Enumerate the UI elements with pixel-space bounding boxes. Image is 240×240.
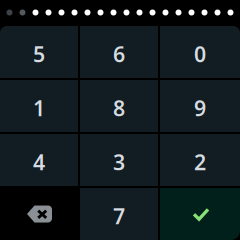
button[interactable]: 8 — [80, 80, 158, 132]
button[interactable]: 9 — [160, 80, 240, 132]
button[interactable]: Confirm — [160, 188, 240, 240]
staticText: 2 — [194, 148, 206, 176]
staticText: 0 — [194, 40, 206, 68]
button[interactable]: 4 — [0, 134, 78, 186]
button[interactable]: 3 — [80, 134, 158, 186]
staticText: 7 — [113, 202, 125, 230]
button[interactable]: 6 — [80, 26, 158, 78]
staticText: 1 — [33, 94, 45, 122]
staticText: 4 — [33, 148, 45, 176]
staticText: 8 — [113, 94, 125, 122]
button[interactable]: 0 — [160, 26, 240, 78]
button[interactable]: 2 — [160, 134, 240, 186]
staticText: 9 — [194, 94, 206, 122]
staticText: 5 — [33, 40, 45, 68]
staticText: 3 — [113, 148, 125, 176]
button[interactable]: 7 — [80, 188, 158, 240]
button[interactable]: 1 — [0, 80, 78, 132]
staticText: 6 — [113, 40, 125, 68]
button[interactable]: Delete — [0, 188, 78, 240]
button[interactable]: 5 — [0, 26, 78, 78]
